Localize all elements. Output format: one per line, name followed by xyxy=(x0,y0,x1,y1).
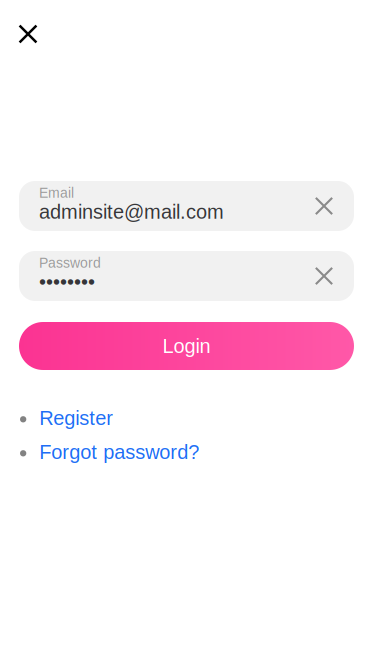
staticText: Password xyxy=(39,255,101,271)
staticText: Email xyxy=(39,185,74,201)
staticText: adminsite@mail.com xyxy=(39,201,224,223)
staticText: •••••••• xyxy=(39,271,95,293)
button[interactable]: Login xyxy=(19,322,354,370)
button[interactable]: Clear Password xyxy=(294,251,354,301)
staticText: Login xyxy=(162,335,210,357)
staticText: Forgot password? xyxy=(39,441,199,463)
button[interactable]: Register xyxy=(0,401,373,435)
button[interactable]: Clear Email xyxy=(294,181,354,231)
staticText: Register xyxy=(39,407,113,429)
button[interactable]: Forgot password? xyxy=(0,435,373,469)
button[interactable]: Close xyxy=(6,12,50,56)
